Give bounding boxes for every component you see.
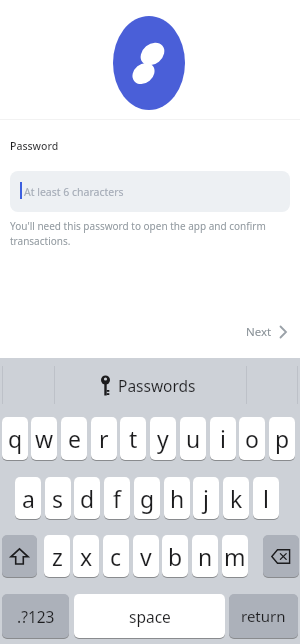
button[interactable]: x [73, 535, 99, 577]
button[interactable]: s [45, 477, 71, 519]
button[interactable]: v [133, 535, 159, 577]
button[interactable]: space [74, 594, 225, 638]
staticText: Passwords [118, 375, 196, 396]
button[interactable]: o [239, 417, 265, 460]
button[interactable]: l [253, 477, 279, 519]
staticText: t [129, 423, 138, 454]
button[interactable]: u [180, 417, 206, 460]
staticText: h [170, 483, 185, 514]
staticText: c [110, 541, 122, 572]
button[interactable]: b [162, 535, 188, 577]
button[interactable]: h [164, 477, 190, 519]
staticText: space [129, 606, 171, 627]
staticText: e [68, 423, 81, 454]
button[interactable]: Next [246, 322, 287, 342]
staticText: n [198, 541, 213, 572]
button[interactable]: c [103, 535, 129, 577]
staticText: p [275, 423, 290, 454]
staticText: b [168, 541, 183, 572]
button[interactable]: d [74, 477, 100, 519]
staticText: a [22, 483, 35, 514]
staticText: You'll need this password to open the ap… [10, 219, 266, 248]
staticText: l [263, 483, 269, 514]
staticText: .?123 [17, 606, 55, 627]
staticText: d [80, 483, 95, 514]
button[interactable]: e [61, 417, 87, 460]
staticText: m [224, 541, 246, 572]
staticText: Password [10, 139, 59, 153]
button[interactable]: k [223, 477, 249, 519]
button[interactable]: j [193, 477, 219, 519]
staticText: At least 6 characters [24, 185, 124, 199]
staticText: s [52, 483, 64, 514]
button[interactable]: i [210, 417, 236, 460]
staticText: q [8, 423, 23, 454]
button[interactable]: a [15, 477, 41, 519]
staticText: o [245, 423, 259, 454]
staticText: f [113, 483, 121, 514]
button[interactable] [2, 535, 37, 577]
button[interactable]: At least 6 characters [10, 171, 290, 212]
button[interactable]: n [192, 535, 218, 577]
button[interactable]: Passwords [52, 358, 243, 412]
staticText: z [52, 541, 63, 572]
button[interactable]: return [229, 594, 298, 638]
staticText: j [203, 483, 209, 514]
button[interactable]: g [134, 477, 160, 519]
staticText: Next [246, 324, 272, 340]
button[interactable]: m [222, 535, 248, 577]
staticText: u [186, 423, 201, 454]
button[interactable]: f [104, 477, 130, 519]
staticText: k [230, 483, 243, 514]
staticText: i [220, 423, 226, 454]
button[interactable]: t [120, 417, 146, 460]
button[interactable]: .?123 [2, 594, 69, 638]
button[interactable]: z [44, 535, 70, 577]
staticText: y [157, 423, 169, 454]
button[interactable]: r [91, 417, 117, 460]
staticText: w [35, 423, 54, 454]
button[interactable]: p [269, 417, 295, 460]
staticText: r [99, 423, 109, 454]
button[interactable]: y [150, 417, 176, 460]
staticText: g [140, 483, 155, 514]
staticText: x [80, 541, 93, 572]
button[interactable]: q [2, 417, 28, 460]
staticText: v [140, 541, 152, 572]
button[interactable] [263, 535, 299, 577]
button[interactable]: w [31, 417, 57, 460]
staticText: return [241, 606, 286, 626]
